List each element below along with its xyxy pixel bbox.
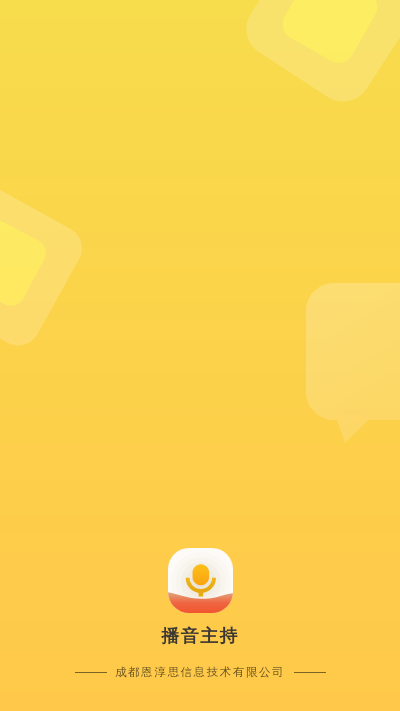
button[interactable]: 播音主持 app icon: [168, 548, 233, 613]
staticText: 播音主持: [161, 625, 239, 648]
staticText: 成都恩淳思信息技术有限公司: [115, 665, 286, 679]
